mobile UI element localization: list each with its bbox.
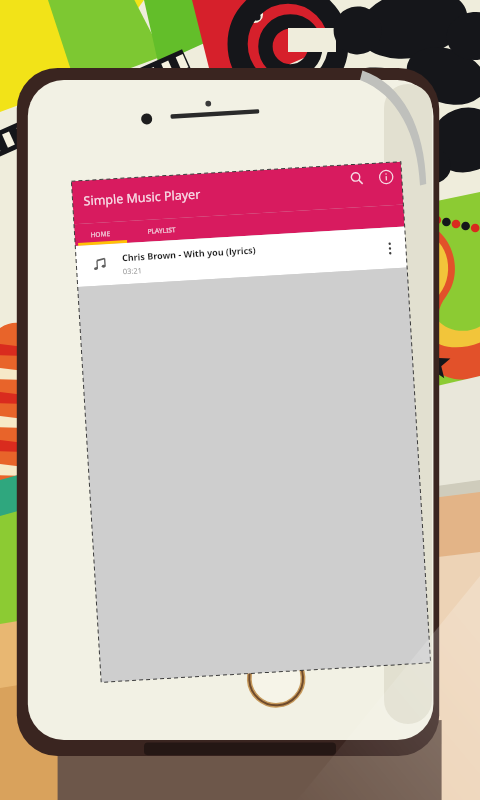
staticText: HOME [90,229,111,239]
button[interactable]: Chris Brown - With you (lyrics) [75,226,407,287]
staticText: 03:21 [122,265,143,276]
staticText: Chris Brown - With you (lyrics) [122,243,256,263]
staticText: PLAYLIST [147,225,177,236]
button[interactable]: More options [377,236,403,261]
button[interactable]: Info [374,165,397,188]
button[interactable]: Search [345,167,368,190]
button[interactable]: HOME [74,221,127,246]
button[interactable]: PLAYLIST [126,217,197,243]
staticText: Simple Music Player [83,186,201,209]
